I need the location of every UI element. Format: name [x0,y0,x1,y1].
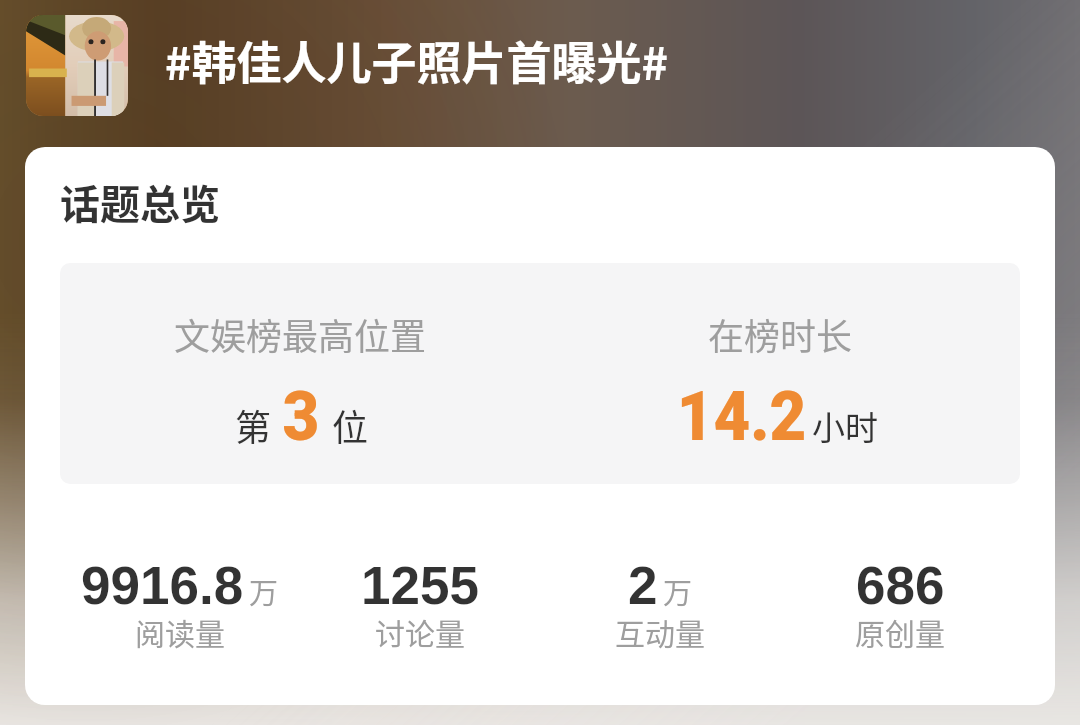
button[interactable]: 686 [780,556,1020,658]
staticText: 讨论量 [375,610,465,653]
staticText: 文娱榜最高位置 [174,308,427,360]
staticText: 位 [332,399,369,451]
button[interactable]: 在榜时长 [540,263,1020,484]
button[interactable]: 1255 [300,556,540,658]
staticText: 互动量 [615,610,705,653]
button[interactable]: Topic image [26,15,128,116]
staticText: 9916.8 [81,556,244,615]
staticText: 小时 [812,402,878,450]
staticText: 第 [235,399,272,451]
staticText: 3 [283,376,319,457]
staticText: 万 [663,570,693,612]
button[interactable]: #韩佳人儿子照片首曝光# [150,14,690,116]
staticText: 1255 [361,556,479,615]
button[interactable]: 文娱榜最高位置 [60,263,540,484]
staticText: 原创量 [855,610,945,653]
button[interactable]: 9916.8 [60,556,300,658]
staticText: 话题总览 [60,173,220,231]
staticText: 在榜时长 [708,308,853,360]
staticText: 14.2 [677,376,806,457]
staticText: 万 [249,570,279,612]
staticText: 阅读量 [135,610,225,653]
button[interactable]: 2 [540,556,780,658]
staticText: #韩佳人儿子照片首曝光# [165,28,669,93]
staticText: 2 [628,556,658,615]
staticText: 686 [856,556,945,615]
